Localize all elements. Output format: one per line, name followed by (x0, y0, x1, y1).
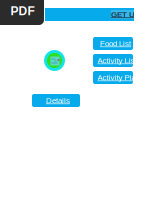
button[interactable]: Activity Plan (93, 71, 133, 84)
staticText: Details (46, 96, 70, 105)
button[interactable]: PDF (0, 0, 44, 25)
button[interactable]: Activity List (93, 54, 133, 67)
staticText: Activity List (97, 56, 136, 65)
staticText: PDF (10, 4, 34, 18)
button[interactable]: Food List (93, 37, 133, 50)
button[interactable]: Details (32, 94, 80, 107)
staticText: Food List (100, 39, 131, 48)
staticText: Activity Plan (97, 73, 139, 82)
staticText: GET UP (111, 10, 140, 19)
